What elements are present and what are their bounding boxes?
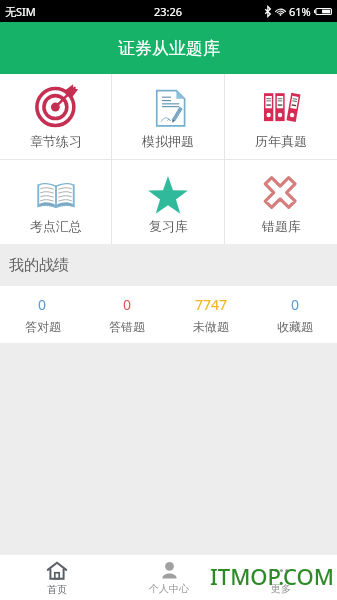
button[interactable]: 章节练习 [0,74,111,159]
staticText: 23:26 [154,4,183,19]
button[interactable]: 历年真题 [225,74,337,159]
staticText: 考点汇总 [30,218,82,234]
staticText: 答错题 [109,319,145,334]
staticText: 复习库 [149,218,188,234]
button[interactable]: 错题库 [225,160,337,244]
button[interactable]: 更多 [225,555,337,600]
staticText: 首页 [47,583,67,596]
staticText: 答对题 [25,319,61,334]
button[interactable]: 7747 [169,286,253,343]
button[interactable]: 考点汇总 [0,160,111,244]
button[interactable]: 0 [253,286,337,343]
staticText: 61% [289,4,311,19]
staticText: 7747 [195,295,228,314]
staticText: 0 [123,295,132,314]
staticText: 错题库 [262,218,301,234]
button[interactable]: 复习库 [112,160,224,244]
staticText: 历年真题 [255,133,307,149]
staticText: 证券从业题库 [118,38,220,59]
button[interactable]: 0 [85,286,169,343]
staticText: ITMOP.COM [210,561,335,591]
button[interactable]: 个人中心 [113,555,225,600]
staticText: 收藏题 [277,319,313,334]
staticText: 个人中心 [149,582,189,595]
staticText: 无SIM [5,4,36,19]
button[interactable]: 首页 [0,555,113,600]
button[interactable]: 模拟押题 [112,74,224,159]
staticText: 更多 [271,582,291,595]
staticText: 未做题 [193,319,229,334]
staticText: 0 [291,295,300,314]
staticText: 模拟押题 [142,133,194,149]
staticText: 我的战绩 [9,256,69,275]
staticText: 0 [38,295,47,314]
staticText: 章节练习 [30,133,82,149]
button[interactable]: 0 [0,286,85,343]
